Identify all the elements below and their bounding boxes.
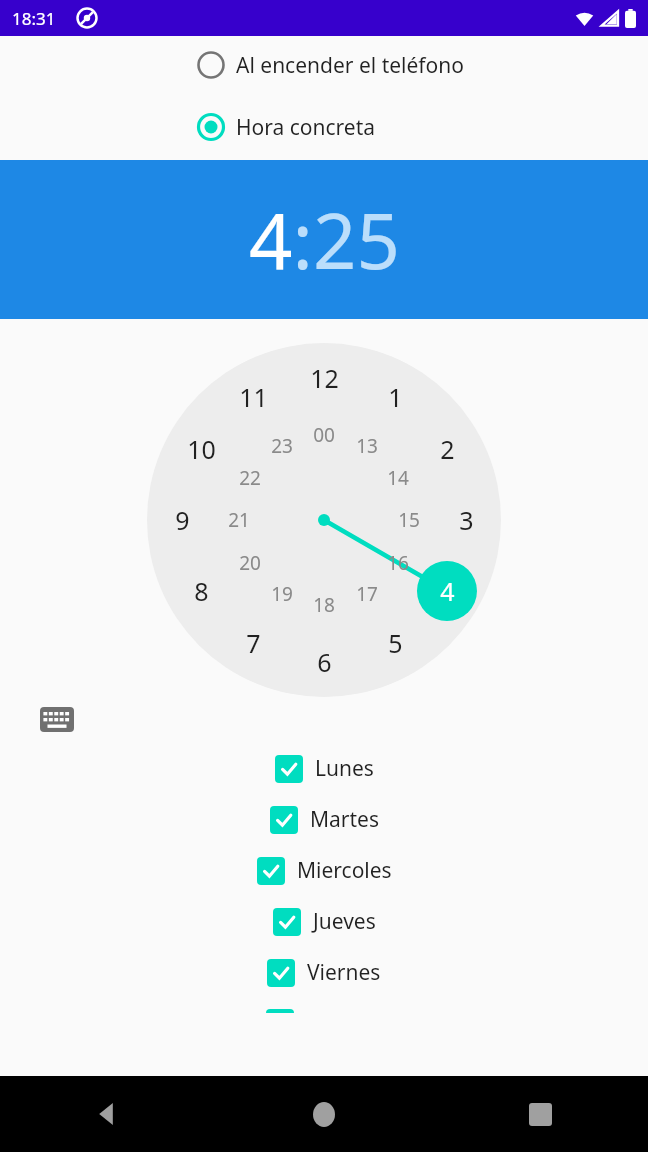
staticText: 22 xyxy=(239,465,261,491)
button[interactable]: Al encender el teléfono xyxy=(0,50,648,80)
staticText: 4 xyxy=(440,574,455,608)
staticText: Lunes xyxy=(315,754,374,783)
staticText: Viernes xyxy=(307,958,381,987)
staticText: 7 xyxy=(246,626,261,660)
staticText: 16 xyxy=(387,550,409,576)
staticText: 21 xyxy=(228,507,250,533)
staticText: 18 xyxy=(313,592,335,618)
staticText: 2 xyxy=(440,432,455,466)
staticText: 15 xyxy=(398,507,420,533)
button[interactable]: Aplicaciones recientes xyxy=(432,1076,648,1152)
button[interactable]: Martes xyxy=(270,805,379,834)
staticText: 11 xyxy=(239,380,268,414)
staticText: 13 xyxy=(356,433,378,459)
button[interactable]: Atrás xyxy=(0,1076,216,1152)
staticText: 19 xyxy=(271,581,293,607)
staticText: Hora concreta xyxy=(236,113,376,142)
button[interactable]: Inicio xyxy=(216,1076,432,1152)
staticText: Al encender el teléfono xyxy=(236,51,464,80)
button[interactable]: Miercoles xyxy=(257,856,392,885)
staticText: 20 xyxy=(239,550,261,576)
staticText: 17 xyxy=(356,581,378,607)
staticText: 23 xyxy=(271,433,293,459)
staticText: 14 xyxy=(387,465,409,491)
staticText: Miercoles xyxy=(297,856,392,885)
button[interactable]: Jueves xyxy=(273,907,376,936)
button[interactable]: Hora concreta xyxy=(0,112,648,142)
staticText: 10 xyxy=(187,432,216,466)
staticText: 1 xyxy=(388,380,403,414)
button[interactable]: Lunes xyxy=(275,754,374,783)
button[interactable]: 4:25 xyxy=(249,188,400,292)
button[interactable]: Viernes xyxy=(267,958,381,987)
staticText: 9 xyxy=(175,503,190,537)
staticText: 5 xyxy=(388,626,403,660)
staticText: Jueves xyxy=(313,907,376,936)
button[interactable]: Selector de hora xyxy=(147,343,501,697)
staticText: Martes xyxy=(310,805,379,834)
staticText: 12 xyxy=(310,361,339,395)
staticText: 3 xyxy=(459,503,474,537)
button[interactable]: Cambiar a teclado xyxy=(40,707,74,732)
staticText: 8 xyxy=(194,574,209,608)
staticText: 18:31 xyxy=(12,7,56,30)
staticText: 00 xyxy=(313,422,335,448)
staticText: 6 xyxy=(317,645,332,679)
